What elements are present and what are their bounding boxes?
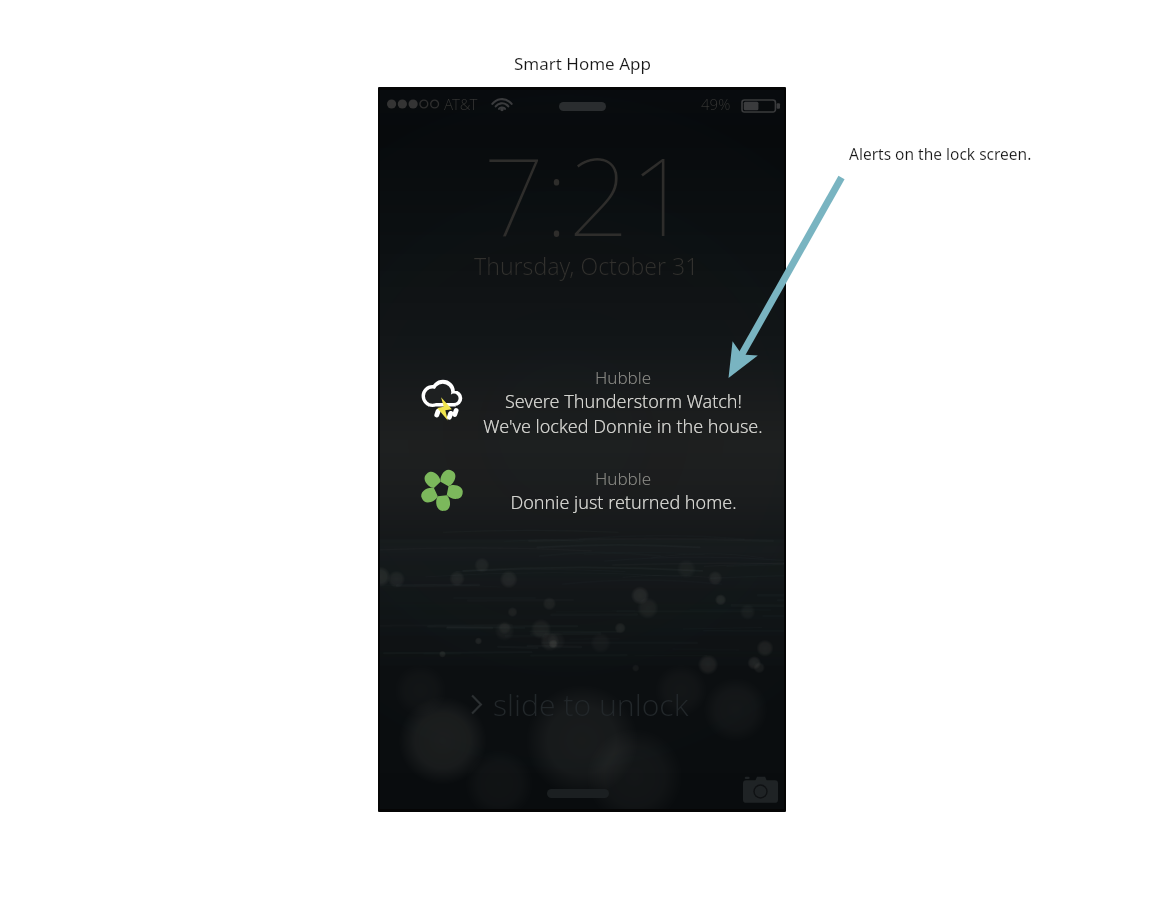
button[interactable]: Camera [738, 767, 782, 809]
button[interactable]: Hubble [380, 459, 784, 511]
staticText: We've locked Donnie in the house. [483, 414, 763, 439]
button[interactable]: Hubble [380, 358, 784, 432]
staticText: Severe Thunderstorm Watch! [505, 389, 742, 414]
staticText: slide to unlock [493, 684, 689, 725]
button[interactable]: slide to unlock [380, 682, 784, 726]
staticText: 49% [701, 94, 731, 114]
staticText: Smart Home App [514, 52, 651, 75]
staticText: Alerts on the lock screen. [849, 143, 1032, 164]
staticText: Donnie just returned home. [510, 490, 737, 515]
staticText: Hubble [595, 467, 652, 490]
staticText: AT&T [444, 94, 478, 114]
staticText: 7:21 [483, 121, 692, 268]
staticText: Thursday, October 31 [474, 250, 699, 281]
staticText: Hubble [595, 366, 652, 389]
